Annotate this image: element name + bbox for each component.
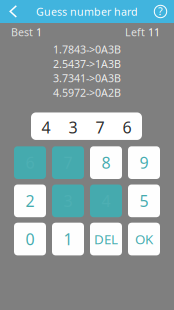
button[interactable]: 1 — [52, 223, 84, 255]
button[interactable]: 8 — [90, 146, 122, 179]
staticText: 2 — [25, 190, 34, 211]
staticText: 5 — [139, 190, 148, 211]
button[interactable]: 3 — [52, 184, 84, 217]
staticText: 11 — [145, 25, 160, 39]
staticText: 4 — [41, 117, 50, 138]
staticText: DEL — [94, 230, 118, 248]
staticText: 7 — [95, 117, 104, 138]
button[interactable]: DEL — [90, 223, 122, 255]
button[interactable]: 0 — [14, 223, 46, 255]
button[interactable]: Help — [146, 0, 174, 23]
button[interactable]: 6 — [14, 146, 46, 179]
staticText: 3.7341->0A3B — [53, 71, 121, 85]
staticText: 3 — [68, 117, 77, 138]
staticText: 1.7843->0A3B — [53, 42, 121, 56]
staticText: 0 — [25, 228, 34, 250]
button[interactable]: 9 — [128, 146, 160, 179]
staticText: Guess number hard — [36, 4, 138, 19]
button[interactable]: 7 — [52, 146, 84, 179]
staticText: 1 — [63, 228, 72, 250]
button[interactable]: 5 — [128, 184, 160, 217]
staticText: OK — [135, 230, 153, 248]
staticText: Best — [11, 25, 33, 39]
button[interactable]: Back — [0, 0, 26, 23]
staticText: 9 — [139, 152, 148, 173]
button[interactable]: 2 — [14, 184, 46, 217]
staticText: 4.5972->0A2B — [53, 85, 121, 100]
staticText: Left — [125, 25, 145, 39]
button[interactable]: 4 — [90, 184, 122, 217]
staticText: 8 — [101, 152, 110, 173]
staticText: 6 — [122, 117, 131, 138]
button[interactable]: OK — [128, 223, 160, 255]
staticText: 2.5437->1A3B — [53, 57, 121, 71]
staticText: 1 — [33, 25, 42, 39]
staticText: ? — [158, 4, 163, 18]
